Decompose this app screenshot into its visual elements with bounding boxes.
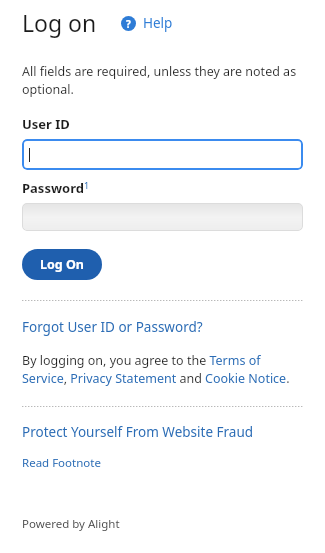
staticText: User ID <box>22 115 70 133</box>
staticText: Protect Yourself From Website Fraud <box>22 423 254 441</box>
staticText: ? <box>126 17 131 31</box>
button[interactable]: Password input <box>22 203 303 231</box>
staticText: By logging on, you agree to the Terms of… <box>22 352 303 387</box>
button[interactable]: Read Footnote <box>22 455 101 471</box>
staticText: Powered by Alight <box>22 516 120 532</box>
button[interactable]: Log On <box>22 249 102 280</box>
button[interactable]: Help <box>121 10 173 36</box>
staticText: Forgot User ID or Password? <box>22 318 203 336</box>
other: Help <box>121 16 136 31</box>
staticText: Read Footnote <box>22 455 101 471</box>
button[interactable]: User ID input <box>22 139 303 170</box>
staticText: Log On <box>40 256 84 273</box>
staticText: Help <box>143 14 173 32</box>
staticText: Log on <box>22 7 97 38</box>
button[interactable]: Protect Yourself From Website Fraud <box>22 423 254 441</box>
staticText: Password1 <box>22 179 90 197</box>
button[interactable]: Forgot User ID or Password? <box>22 318 203 336</box>
staticText: All fields are required, unless they are… <box>22 63 303 98</box>
